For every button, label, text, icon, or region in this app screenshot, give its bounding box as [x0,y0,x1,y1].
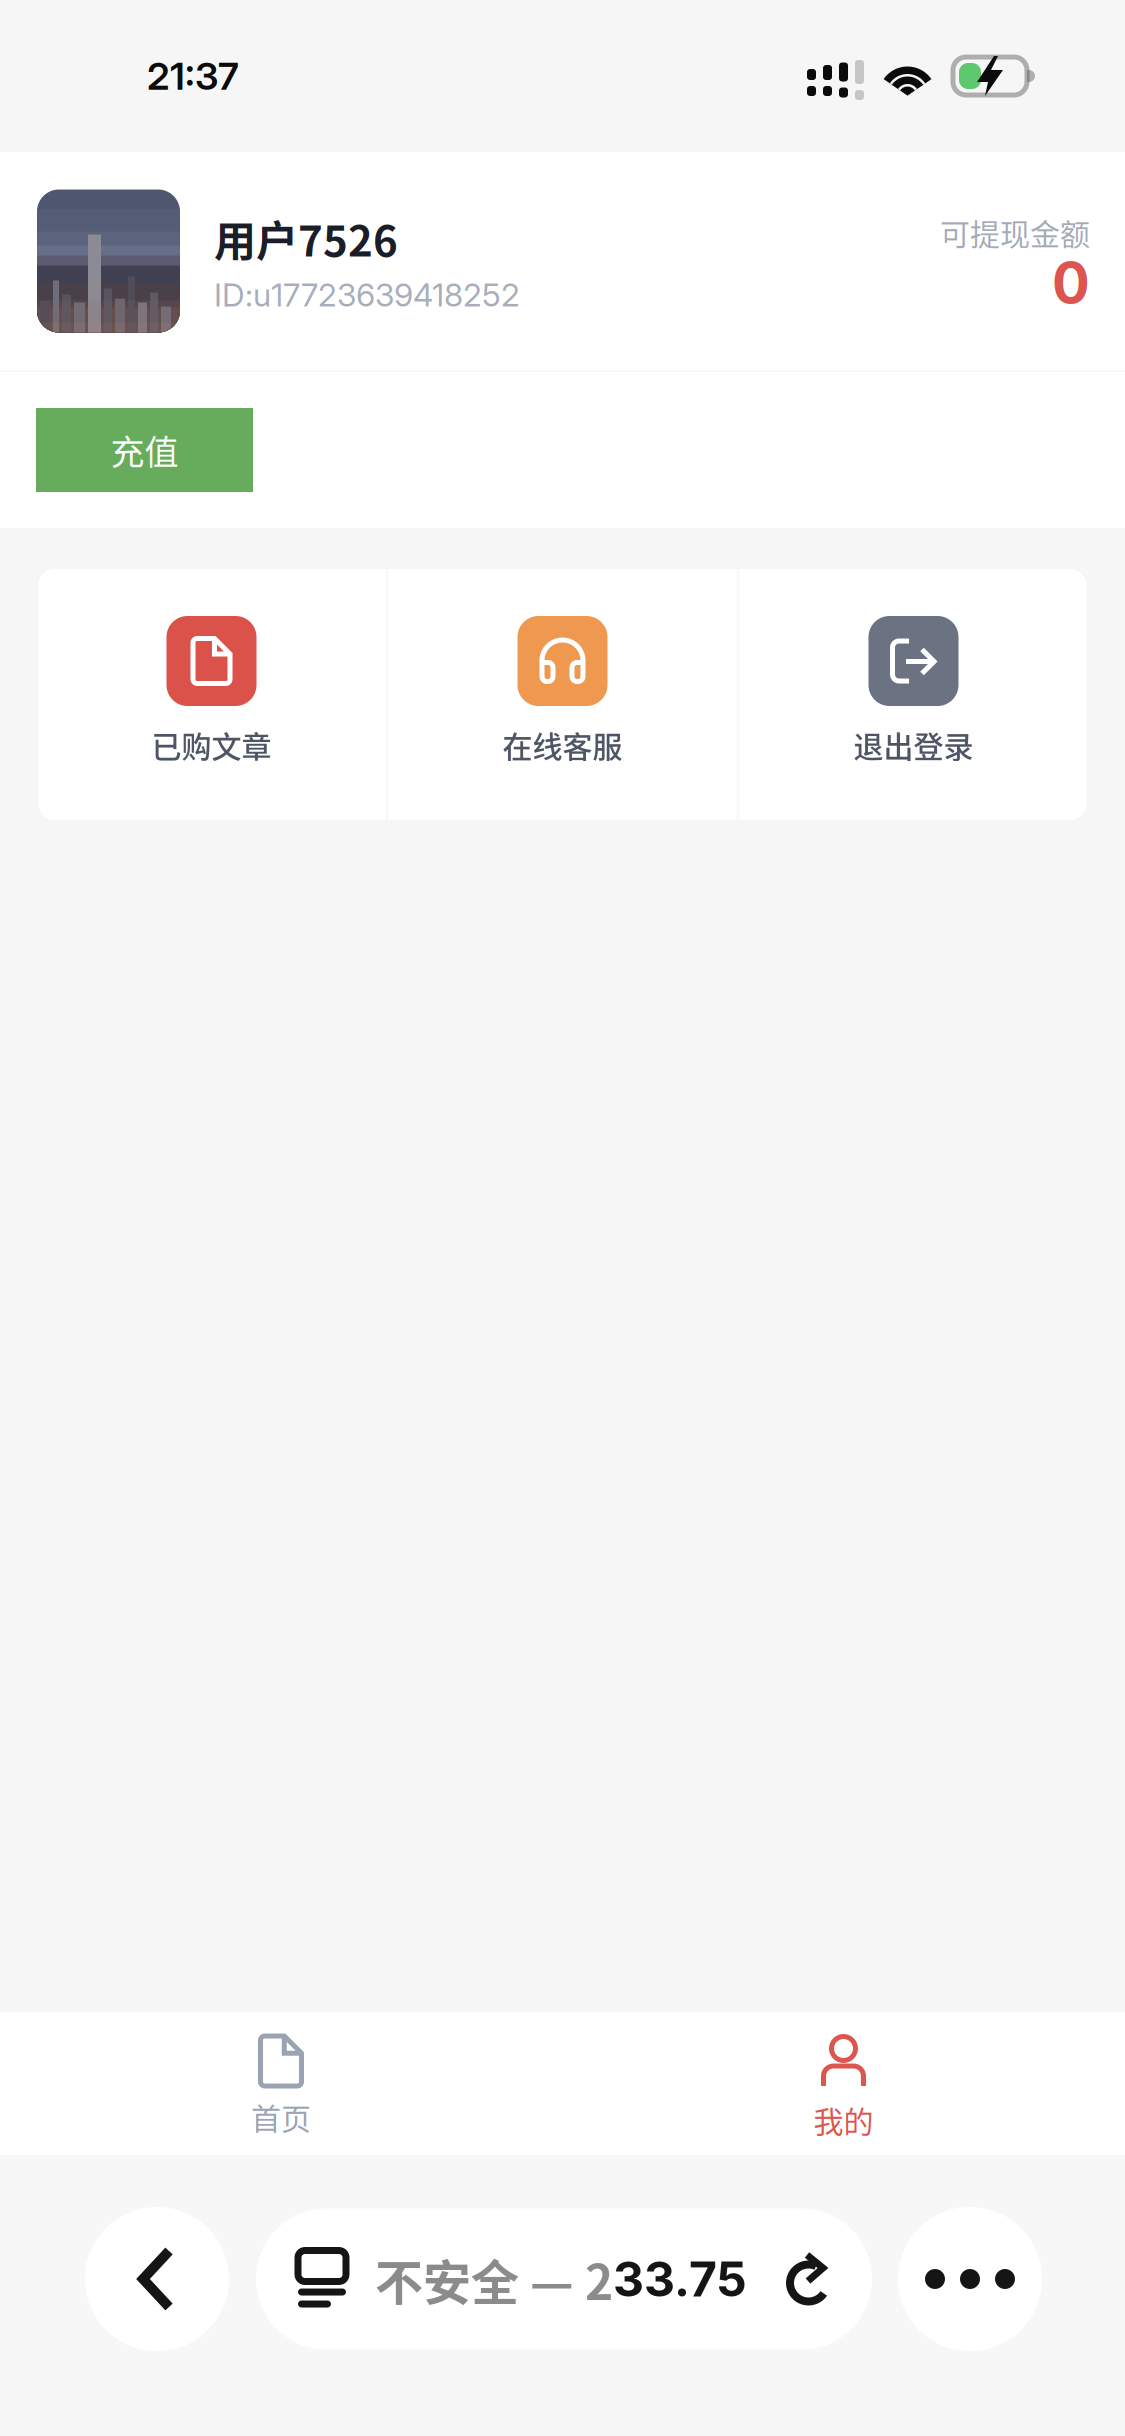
button[interactable]: Back [85,2207,229,2351]
button[interactable]: 我的 [562,2012,1125,2155]
button[interactable]: 在线客服 [388,569,736,820]
staticText: 用户7526 [214,208,398,268]
staticText: 21:37 [147,53,239,99]
button[interactable]: 不安全 — 2 [256,2208,872,2349]
staticText: 退出登录 [853,723,973,766]
staticText: ID:u17723639418252 [214,275,520,314]
staticText: 在线客服 [502,723,622,766]
staticText: 首页 [251,2095,311,2138]
staticText: 33.75 [613,2250,747,2308]
button[interactable]: More [898,2207,1042,2351]
staticText: 可提现金额 [940,210,1090,254]
staticText: 已购文章 [151,723,271,766]
button[interactable]: 首页 [0,2012,562,2155]
staticText: 不安全 — 2 [375,2244,613,2314]
staticText: 充值 [110,425,178,475]
staticText: 0 [1052,249,1090,317]
button[interactable]: 已购文章 [37,569,385,820]
staticText: 我的 [813,2098,873,2141]
button[interactable]: 充值 [36,408,253,492]
button[interactable]: 退出登录 [739,569,1087,820]
